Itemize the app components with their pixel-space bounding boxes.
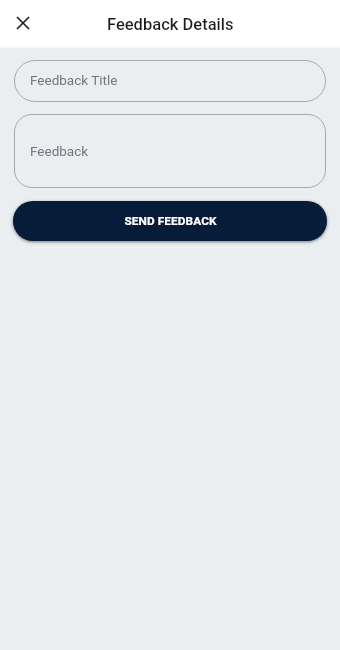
staticText: SEND FEEDBACK — [124, 214, 217, 228]
button[interactable]: Feedback — [14, 114, 326, 188]
button[interactable]: SEND FEEDBACK — [13, 201, 327, 241]
staticText: Feedback Title — [30, 72, 118, 88]
button[interactable]: Feedback Title — [14, 60, 326, 102]
staticText: Feedback Details — [107, 15, 234, 34]
button[interactable]: Close — [6, 6, 40, 40]
staticText: Feedback — [30, 143, 89, 159]
